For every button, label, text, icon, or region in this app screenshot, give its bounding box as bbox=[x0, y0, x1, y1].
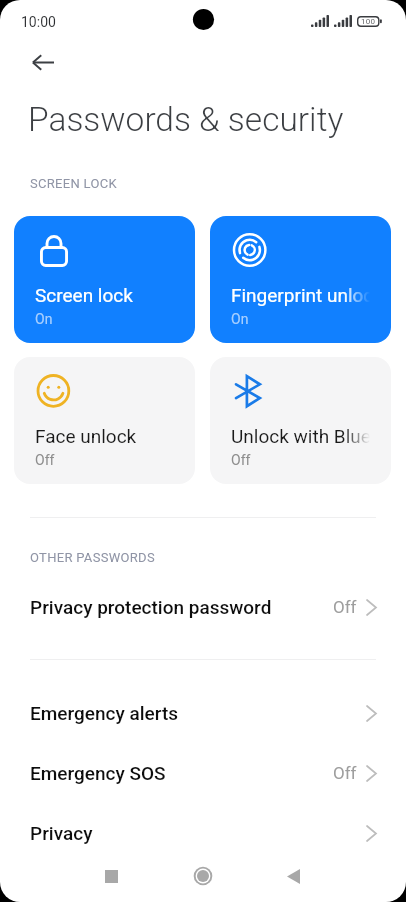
staticText: Emergency SOS bbox=[30, 762, 166, 784]
button[interactable]: Recent apps bbox=[86, 851, 136, 901]
staticText: Fingerprint unlock bbox=[231, 284, 370, 306]
staticText: Screen lock bbox=[35, 284, 133, 306]
staticText: Off bbox=[333, 763, 357, 783]
staticText: Off bbox=[333, 597, 357, 617]
staticText: Privacy protection password bbox=[30, 596, 272, 618]
staticText: Face unlock bbox=[35, 425, 137, 447]
button[interactable]: Screen lock bbox=[14, 216, 195, 343]
staticText: 100 bbox=[361, 17, 376, 26]
staticText: Privacy bbox=[30, 822, 93, 844]
button[interactable]: Back bbox=[268, 851, 318, 901]
staticText: On bbox=[35, 311, 53, 327]
staticText: Unlock with Bluetooth bbox=[231, 425, 370, 447]
button[interactable]: Emergency SOS bbox=[0, 743, 406, 803]
button[interactable]: Privacy bbox=[0, 803, 406, 863]
button[interactable]: Unlock with Bluetooth bbox=[210, 357, 391, 484]
staticText: On bbox=[231, 311, 249, 327]
staticText: Emergency alerts bbox=[30, 702, 179, 724]
button[interactable]: Face unlock bbox=[14, 357, 195, 484]
staticText: SCREEN LOCK bbox=[30, 176, 117, 191]
staticText: Off bbox=[231, 452, 251, 468]
staticText: 10:00 bbox=[21, 14, 56, 30]
button[interactable]: Emergency alerts bbox=[0, 683, 406, 743]
button[interactable]: Back bbox=[23, 42, 63, 82]
button[interactable]: Home bbox=[178, 851, 228, 901]
staticText: OTHER PASSWORDS bbox=[30, 550, 155, 565]
button[interactable]: Fingerprint unlock bbox=[210, 216, 391, 343]
staticText: Passwords & security bbox=[28, 100, 344, 139]
staticText: Off bbox=[35, 452, 55, 468]
button[interactable]: Privacy protection password bbox=[0, 577, 406, 637]
